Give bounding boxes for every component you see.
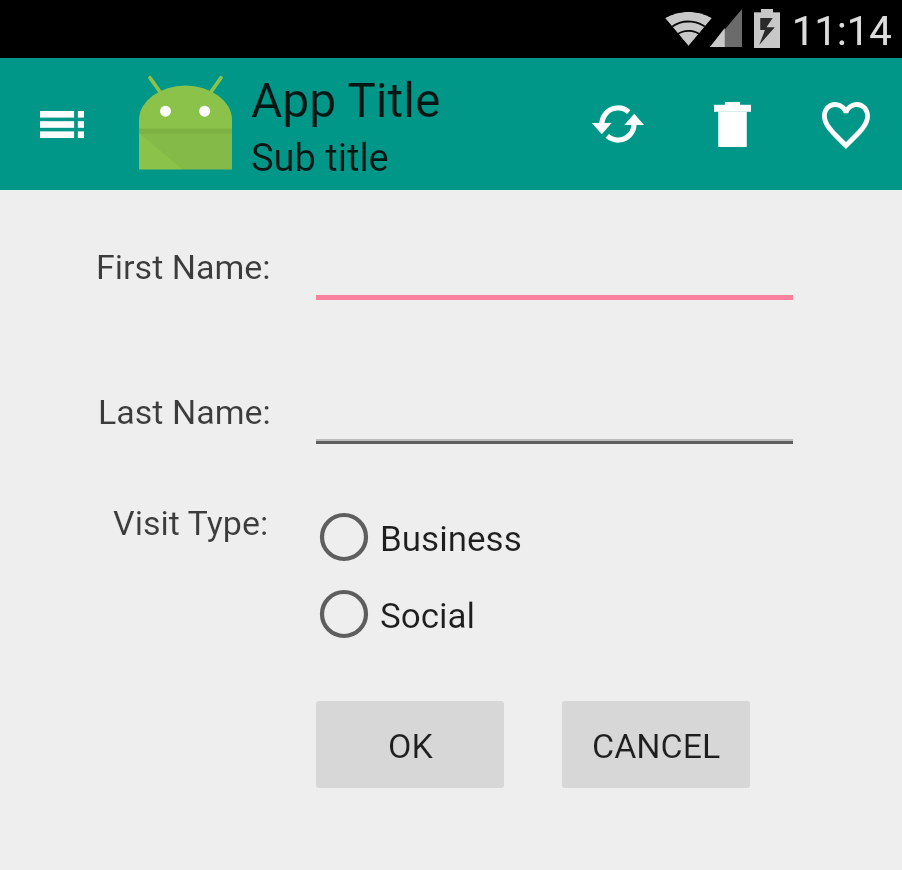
button[interactable]: Navigation menu: [22, 84, 102, 164]
button[interactable]: Business: [320, 512, 522, 561]
staticText: App Title: [251, 72, 441, 128]
staticText: 11:14: [792, 8, 892, 55]
staticText: Social: [380, 596, 476, 637]
button[interactable]: Social: [320, 589, 476, 638]
staticText: Business: [380, 519, 522, 560]
button[interactable]: CANCEL: [562, 701, 750, 788]
staticText: CANCEL: [592, 726, 721, 766]
staticText: First Name:: [96, 247, 271, 287]
button[interactable]: Delete: [692, 84, 772, 164]
staticText: OK: [388, 726, 433, 766]
button[interactable]: Refresh: [578, 84, 658, 164]
staticText: Visit Type:: [113, 503, 269, 543]
staticText: Last Name:: [98, 392, 271, 432]
staticText: Sub title: [251, 136, 389, 181]
button[interactable]: Favorite: [806, 85, 886, 165]
button[interactable]: OK: [316, 701, 504, 788]
